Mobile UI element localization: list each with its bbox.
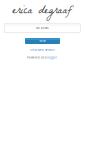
- staticText: Blogger.: [45, 56, 58, 59]
- staticText: No posts.: [36, 26, 49, 30]
- staticText: Powered by: [27, 56, 44, 59]
- button[interactable]: Blogger.: [45, 56, 58, 59]
- staticText: View web version: [30, 48, 55, 52]
- button[interactable]: Home: [25, 38, 60, 44]
- staticText: erica degraaf: [12, 1, 72, 22]
- button[interactable]: View web version: [0, 48, 85, 52]
- staticText: Home: [38, 39, 46, 43]
